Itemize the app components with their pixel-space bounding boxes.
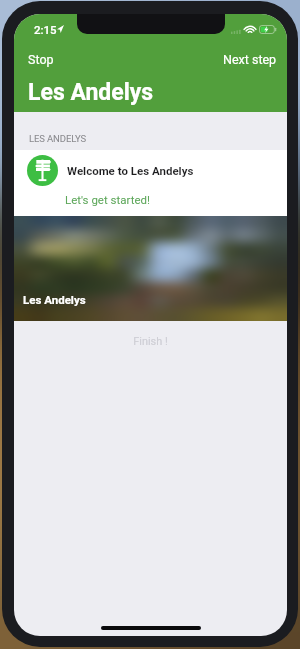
button[interactable]: Welcome to Les Andelys (14, 150, 287, 216)
staticText: Let's get started! (65, 193, 151, 206)
button[interactable]: Stop (22, 48, 60, 71)
staticText: Welcome to Les Andelys (67, 164, 194, 177)
staticText: LES ANDELYS (29, 133, 87, 144)
button[interactable]: Les Andelys (14, 216, 287, 321)
staticText: Finish ! (14, 335, 287, 348)
staticText: Stop (28, 52, 54, 67)
button[interactable]: Let's get started! (60, 190, 156, 209)
staticText: Les Andelys (28, 79, 154, 106)
staticText: Les Andelys (23, 293, 86, 306)
staticText: 2:15 (34, 23, 57, 36)
staticText: Next step (223, 52, 277, 67)
button[interactable]: Next step (217, 48, 283, 71)
